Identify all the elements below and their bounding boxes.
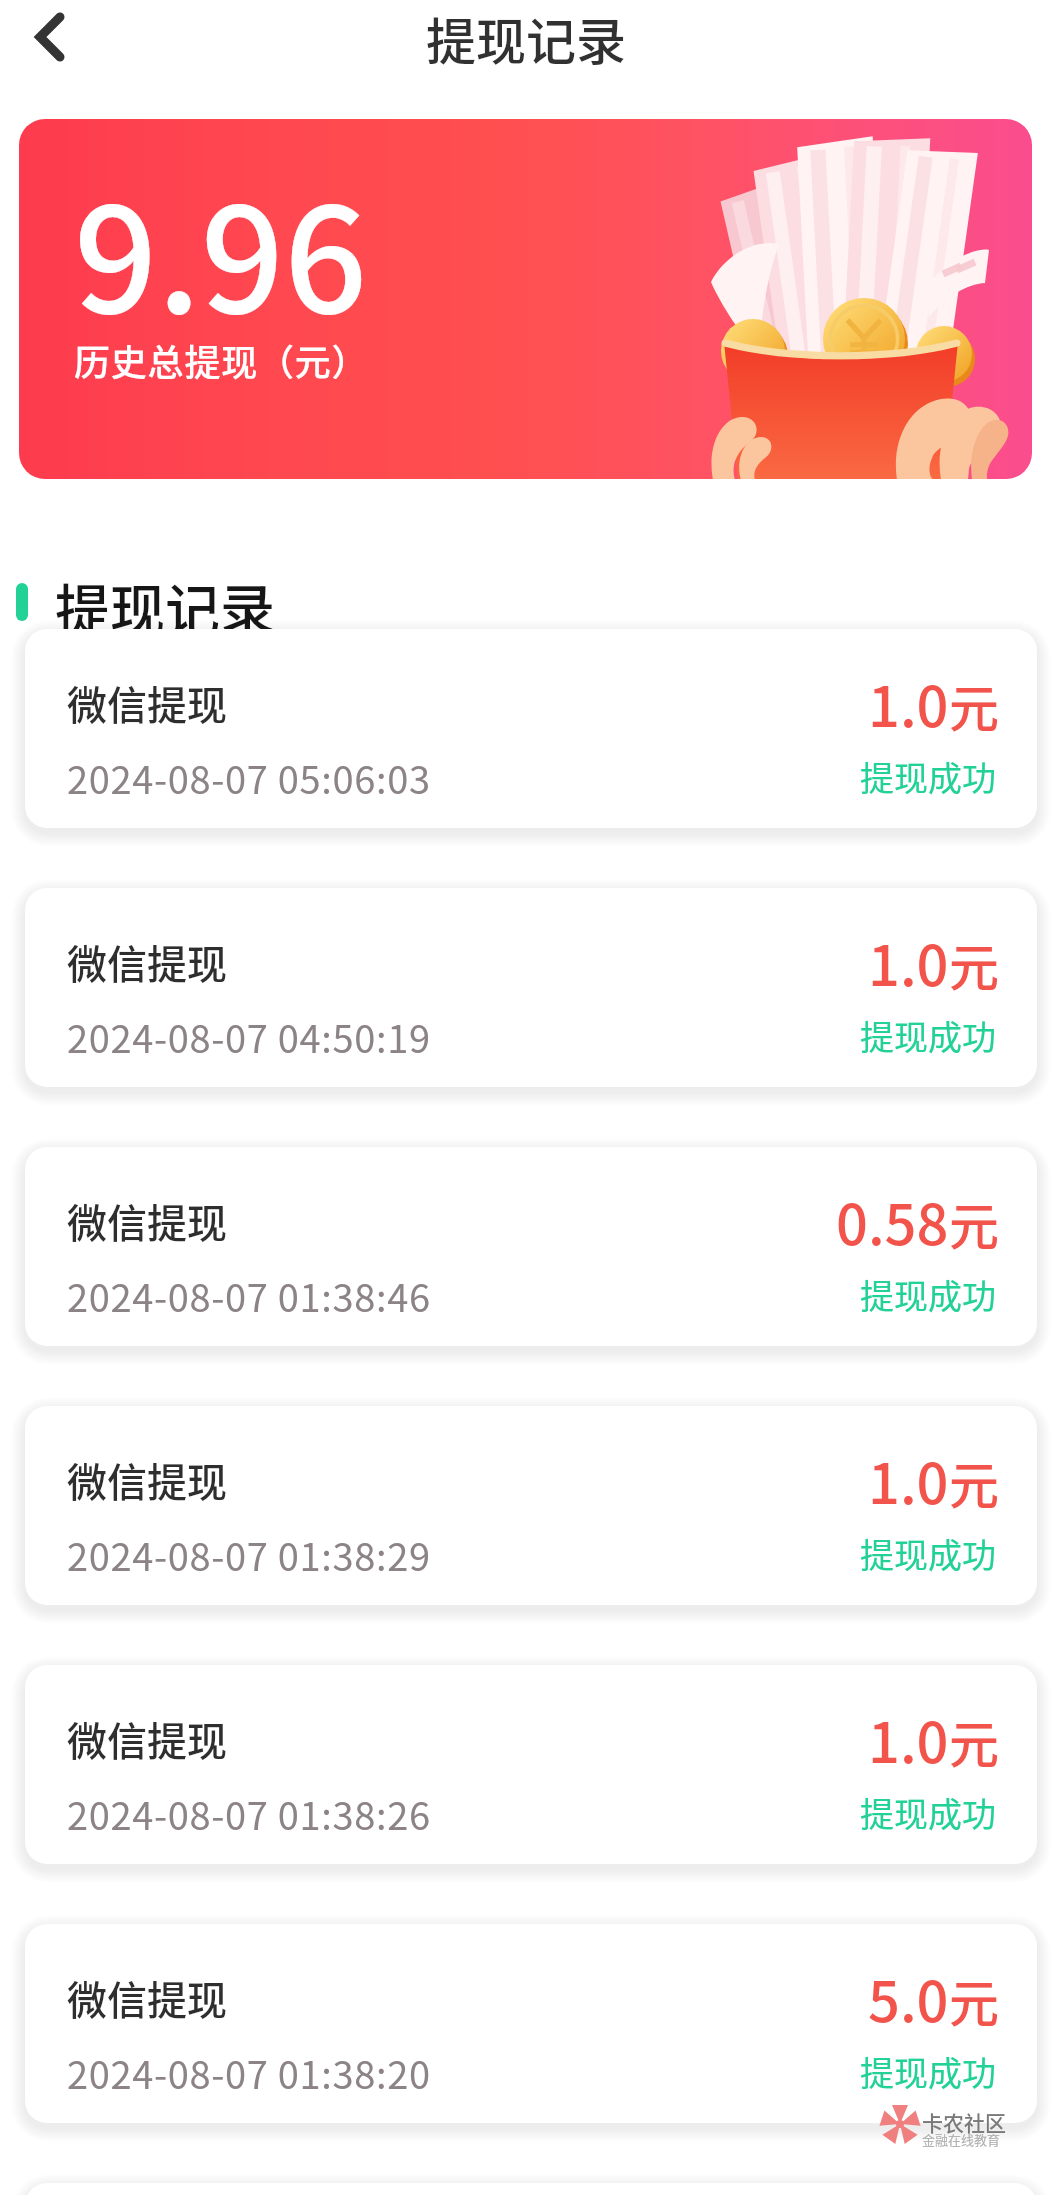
staticText: 提现成功 <box>860 2047 996 2096</box>
staticText: 2024-08-07 01:38:46 <box>67 1268 431 1323</box>
button[interactable]: Back <box>14 1 86 73</box>
staticText: 1.0 <box>868 1698 949 1779</box>
staticText: 元 <box>949 928 999 1000</box>
staticText: 提现记录 <box>55 566 276 646</box>
button[interactable]: 微信提现 <box>25 1406 1037 1605</box>
staticText: 元 <box>949 1705 999 1777</box>
staticText: 提现记录 <box>426 2 626 74</box>
staticText: 微信提现 <box>67 1451 227 1509</box>
button[interactable]: 微信提现 <box>25 888 1037 1087</box>
staticText: 微信提现 <box>67 1969 227 2027</box>
staticText: 微信提现 <box>67 674 227 732</box>
staticText: 元 <box>949 1964 999 2036</box>
staticText: 提现成功 <box>860 1011 996 1060</box>
staticText: 元 <box>949 669 999 741</box>
staticText: 2024-08-07 01:38:20 <box>67 2045 431 2100</box>
button[interactable]: 微信提现 <box>25 629 1037 828</box>
staticText: 卡农社区 <box>922 2107 1006 2137</box>
staticText: 2024-08-07 05:06:03 <box>67 750 431 805</box>
staticText: 提现成功 <box>860 1270 996 1319</box>
staticText: 历史总提现（元） <box>74 334 369 386</box>
staticText: 元 <box>949 1446 999 1518</box>
staticText: 2024-08-07 04:50:19 <box>67 1009 431 1064</box>
staticText: 2024-08-07 01:38:29 <box>67 1527 431 1582</box>
staticText: 1.0 <box>868 921 949 1002</box>
staticText: 微信提现 <box>67 1710 227 1768</box>
button[interactable]: 微信提现 <box>25 1665 1037 1864</box>
staticText: 微信提现 <box>67 1192 227 1250</box>
staticText: 9.96 <box>74 144 368 355</box>
staticText: 提现成功 <box>860 1788 996 1837</box>
staticText: 2024-08-07 01:38:26 <box>67 1786 431 1841</box>
staticText: 0.58 <box>836 1180 949 1261</box>
button[interactable]: 微信提现 <box>25 1147 1037 1346</box>
staticText: 提现成功 <box>860 1529 996 1578</box>
button[interactable]: 微信提现 <box>25 1924 1037 2123</box>
staticText: 提现成功 <box>860 752 996 801</box>
staticText: 金融在线教育 <box>922 2130 1001 2149</box>
staticText: 1.0 <box>868 1439 949 1520</box>
staticText: 1.0 <box>868 662 949 743</box>
staticText: 5.0 <box>868 1957 949 2038</box>
staticText: 元 <box>949 1187 999 1259</box>
staticText: 微信提现 <box>67 933 227 991</box>
